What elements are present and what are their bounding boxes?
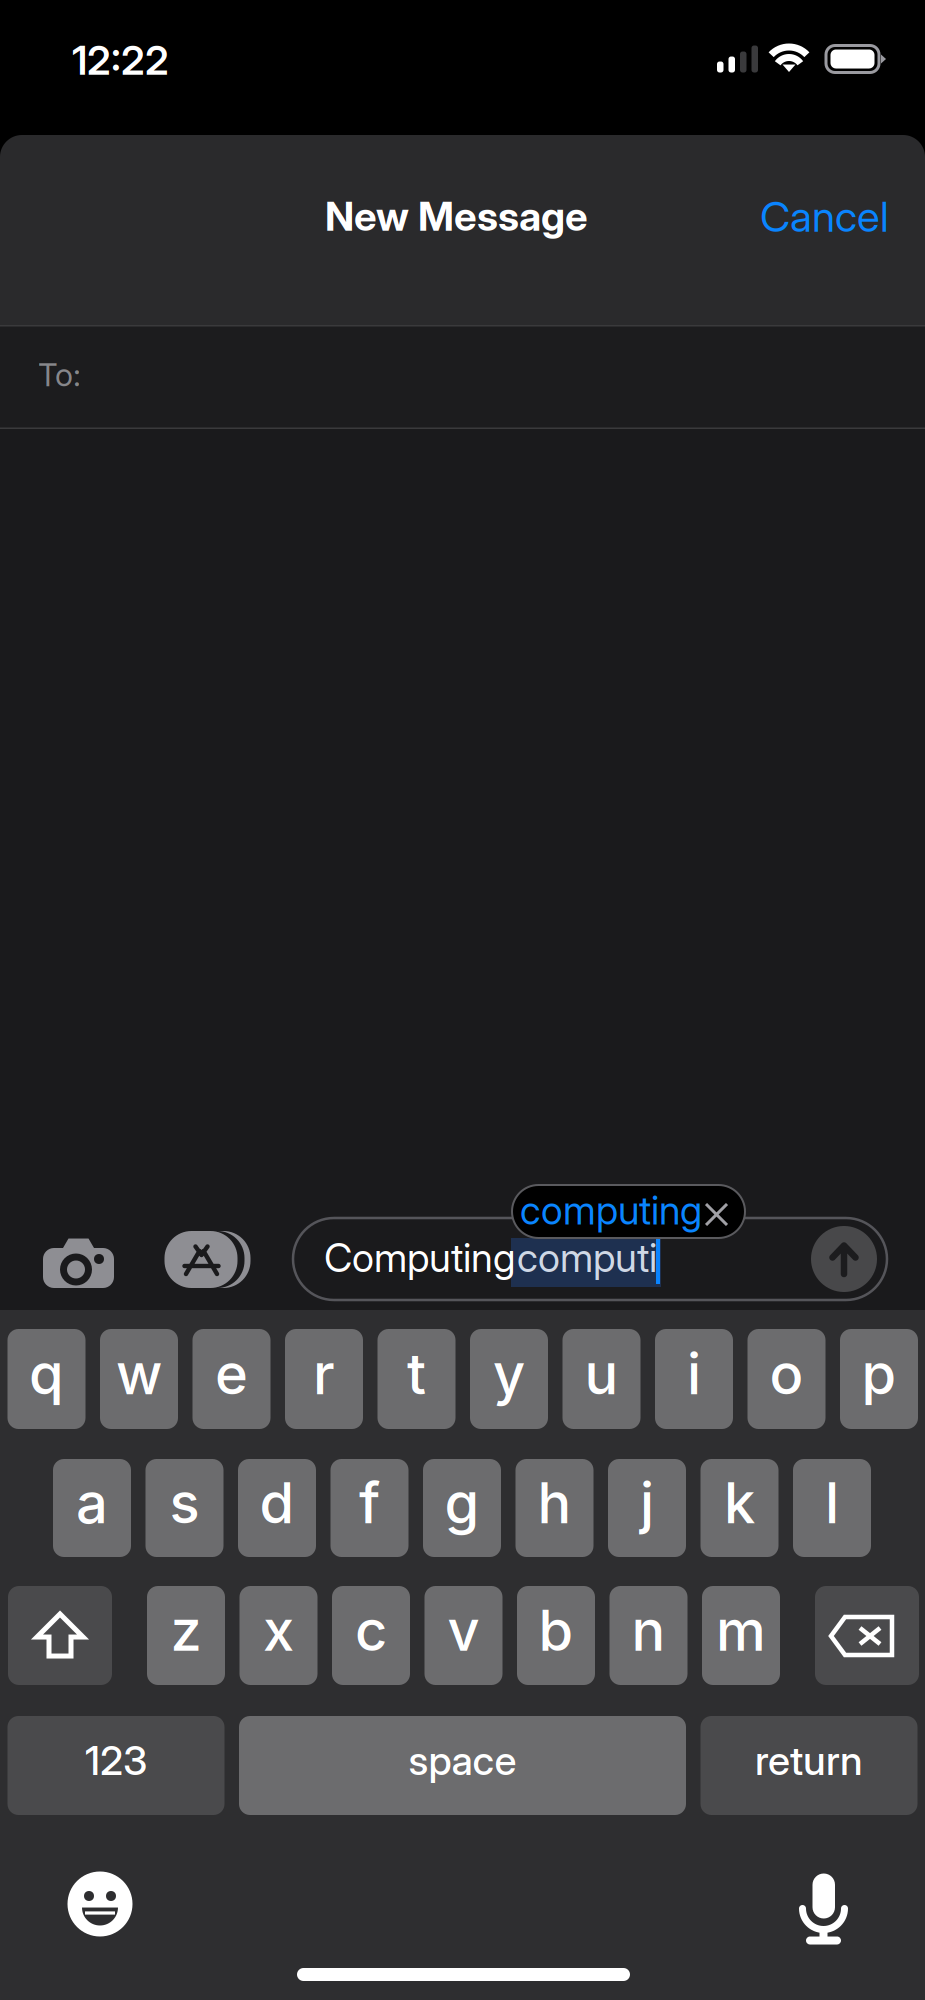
button[interactable]: n bbox=[609, 1586, 687, 1685]
staticText: h bbox=[537, 1469, 571, 1537]
staticText: i bbox=[687, 1340, 701, 1408]
button[interactable]: g bbox=[423, 1459, 501, 1557]
button[interactable]: t bbox=[377, 1329, 455, 1429]
staticText: o bbox=[769, 1340, 803, 1408]
staticText: y bbox=[493, 1340, 525, 1408]
staticText: m bbox=[716, 1597, 766, 1664]
button[interactable]: q bbox=[7, 1329, 85, 1429]
button[interactable]: Camera bbox=[43, 1237, 114, 1289]
button[interactable]: Delete bbox=[815, 1586, 919, 1685]
button[interactable]: y bbox=[470, 1329, 548, 1429]
button[interactable]: 123 bbox=[7, 1716, 224, 1815]
button[interactable]: f bbox=[330, 1459, 408, 1557]
button[interactable]: Apps bbox=[158, 1231, 244, 1288]
button[interactable]: e bbox=[192, 1329, 270, 1429]
staticText: u bbox=[584, 1340, 618, 1408]
staticText: v bbox=[447, 1597, 479, 1664]
button[interactable]: o bbox=[747, 1329, 825, 1429]
staticText: New Message bbox=[325, 192, 588, 240]
staticText: p bbox=[861, 1340, 896, 1408]
staticText: Computing bbox=[324, 1234, 516, 1282]
staticText: c bbox=[355, 1597, 387, 1664]
staticText: s bbox=[169, 1469, 199, 1537]
button[interactable]: space bbox=[239, 1716, 686, 1815]
button[interactable]: v bbox=[424, 1586, 502, 1685]
staticText: b bbox=[538, 1597, 573, 1664]
button[interactable]: Dictate bbox=[799, 1868, 848, 1939]
staticText: a bbox=[76, 1469, 108, 1537]
staticText: f bbox=[359, 1469, 380, 1537]
staticText: n bbox=[631, 1597, 665, 1664]
button[interactable]: Shift bbox=[8, 1586, 112, 1685]
button[interactable]: x bbox=[239, 1586, 317, 1685]
button[interactable]: j bbox=[608, 1459, 686, 1557]
button[interactable]: u bbox=[562, 1329, 640, 1429]
staticText: e bbox=[215, 1340, 248, 1408]
button[interactable]: l bbox=[793, 1459, 871, 1557]
button[interactable]: m bbox=[702, 1586, 780, 1685]
button[interactable]: c bbox=[332, 1586, 410, 1685]
staticText: 123 bbox=[85, 1736, 147, 1785]
staticText: return bbox=[755, 1736, 863, 1785]
staticText: r bbox=[313, 1340, 335, 1408]
button[interactable]: r bbox=[285, 1329, 363, 1429]
staticText: computi bbox=[517, 1234, 657, 1282]
staticText: 12:22 bbox=[72, 36, 169, 84]
staticText: computing bbox=[520, 1187, 702, 1234]
button[interactable]: h bbox=[515, 1459, 593, 1557]
staticText: z bbox=[170, 1597, 201, 1664]
button[interactable]: d bbox=[238, 1459, 316, 1557]
staticText: q bbox=[29, 1340, 64, 1408]
staticText: space bbox=[408, 1736, 516, 1785]
staticText: To: bbox=[38, 356, 81, 394]
button[interactable]: z bbox=[147, 1586, 225, 1685]
staticText: j bbox=[640, 1469, 654, 1537]
button[interactable]: b bbox=[517, 1586, 595, 1685]
button[interactable]: s bbox=[145, 1459, 223, 1557]
button[interactable]: p bbox=[840, 1329, 918, 1429]
staticText: d bbox=[259, 1469, 294, 1537]
staticText: w bbox=[116, 1340, 162, 1408]
staticText: l bbox=[825, 1469, 839, 1537]
staticText: t bbox=[407, 1340, 426, 1408]
button[interactable]: i bbox=[655, 1329, 733, 1429]
staticText: Cancel bbox=[760, 191, 889, 242]
staticText: x bbox=[263, 1597, 294, 1664]
button[interactable]: return bbox=[700, 1716, 917, 1815]
button[interactable]: a bbox=[53, 1459, 131, 1557]
button[interactable]: Emoji bbox=[67, 1871, 132, 1936]
staticText: g bbox=[444, 1469, 479, 1537]
button[interactable]: k bbox=[700, 1459, 778, 1557]
button[interactable]: w bbox=[100, 1329, 178, 1429]
button[interactable]: Cancel bbox=[742, 175, 907, 258]
staticText: k bbox=[724, 1469, 755, 1537]
